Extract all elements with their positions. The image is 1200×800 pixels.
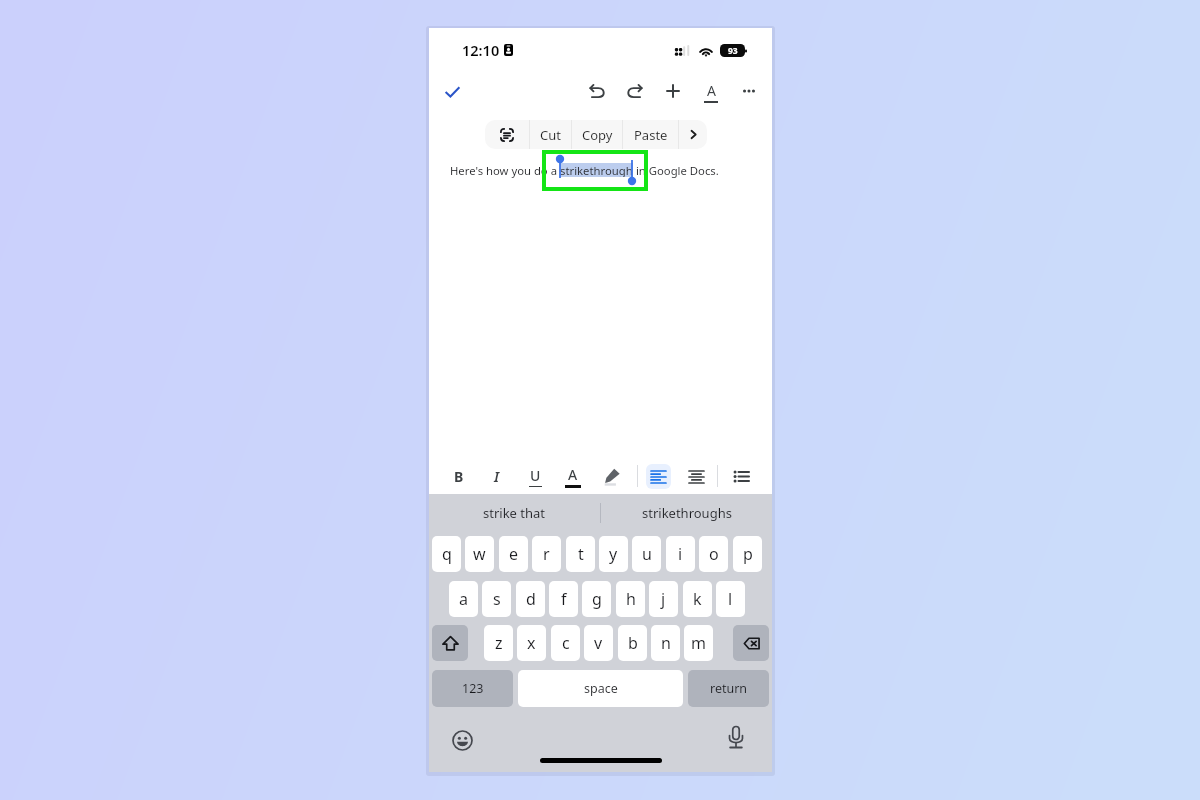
button[interactable]: Text colour bbox=[559, 462, 587, 490]
button[interactable]: n bbox=[651, 625, 680, 661]
button[interactable]: u bbox=[632, 536, 661, 572]
staticText: h bbox=[626, 588, 636, 610]
button[interactable]: Done bbox=[436, 76, 468, 108]
staticText: return bbox=[710, 680, 748, 697]
staticText: 12:10 bbox=[462, 40, 500, 60]
button[interactable]: Emoji bbox=[452, 730, 473, 751]
button[interactable]: h bbox=[616, 581, 645, 617]
staticText: u bbox=[642, 543, 652, 565]
button[interactable]: strikethroughs bbox=[601, 494, 772, 532]
button[interactable]: k bbox=[683, 581, 712, 617]
staticText: B bbox=[454, 467, 464, 486]
button[interactable]: space bbox=[518, 670, 683, 707]
staticText: t bbox=[578, 543, 584, 565]
button[interactable]: Insert bbox=[657, 76, 689, 108]
button[interactable]: a bbox=[449, 581, 478, 617]
button[interactable]: Cut bbox=[530, 120, 571, 149]
staticText: Paste bbox=[634, 126, 668, 144]
button[interactable]: More bbox=[679, 120, 707, 149]
button[interactable]: l bbox=[716, 581, 745, 617]
button[interactable]: j bbox=[649, 581, 678, 617]
button[interactable]: m bbox=[684, 625, 713, 661]
staticText: Cut bbox=[540, 126, 561, 144]
button[interactable]: Backspace bbox=[733, 625, 769, 661]
staticText: r bbox=[543, 543, 550, 565]
button[interactable]: Bulleted list bbox=[726, 461, 756, 491]
staticText: A bbox=[707, 81, 716, 100]
staticText: v bbox=[594, 632, 603, 654]
button[interactable]: c bbox=[551, 625, 580, 661]
button[interactable]: g bbox=[582, 581, 611, 617]
staticText: k bbox=[693, 588, 702, 610]
button[interactable]: Copy bbox=[572, 120, 622, 149]
staticText: i bbox=[678, 543, 683, 565]
button[interactable]: z bbox=[484, 625, 513, 661]
staticText: strikethrough bbox=[560, 163, 633, 177]
staticText: space bbox=[584, 680, 618, 697]
staticText: U bbox=[530, 466, 541, 485]
staticText: 93 bbox=[728, 45, 738, 57]
staticText: p bbox=[743, 543, 753, 565]
staticText: x bbox=[527, 632, 536, 654]
button[interactable]: d bbox=[516, 581, 545, 617]
button[interactable]: v bbox=[584, 625, 613, 661]
button[interactable]: I bbox=[483, 462, 511, 490]
button[interactable]: o bbox=[699, 536, 728, 572]
button[interactable]: 123 bbox=[432, 670, 513, 707]
button[interactable]: Redo bbox=[619, 76, 651, 108]
staticText: y bbox=[609, 543, 618, 565]
staticText: strike that bbox=[483, 504, 546, 522]
button[interactable]: B bbox=[445, 462, 473, 490]
staticText: w bbox=[473, 543, 486, 565]
button[interactable]: i bbox=[666, 536, 695, 572]
staticText: n bbox=[661, 632, 671, 654]
staticText: A bbox=[568, 465, 578, 484]
staticText: s bbox=[493, 588, 501, 610]
staticText: 123 bbox=[462, 680, 484, 697]
button[interactable]: U bbox=[521, 462, 549, 490]
button[interactable]: return bbox=[688, 670, 769, 707]
button[interactable]: e bbox=[499, 536, 528, 572]
staticText: a bbox=[459, 588, 468, 610]
button[interactable]: Dictate bbox=[727, 725, 745, 750]
button[interactable]: s bbox=[482, 581, 511, 617]
button[interactable]: r bbox=[532, 536, 561, 572]
staticText: g bbox=[592, 588, 602, 610]
button[interactable]: y bbox=[599, 536, 628, 572]
staticText: in Google Docs. bbox=[633, 163, 719, 178]
button[interactable]: Undo bbox=[581, 76, 613, 108]
staticText: b bbox=[628, 632, 638, 654]
button[interactable]: x bbox=[517, 625, 546, 661]
button[interactable]: Align center bbox=[684, 464, 709, 489]
staticText: Here's how you do a bbox=[450, 163, 560, 178]
staticText: o bbox=[709, 543, 719, 565]
button[interactable]: More options bbox=[733, 76, 765, 108]
button[interactable]: strike that bbox=[429, 494, 600, 532]
staticText: e bbox=[509, 543, 519, 565]
button[interactable]: q bbox=[432, 536, 461, 572]
staticText: strikethroughs bbox=[642, 504, 732, 522]
staticText: j bbox=[661, 588, 666, 610]
staticText: m bbox=[691, 632, 706, 654]
staticText: Copy bbox=[582, 126, 613, 144]
staticText: f bbox=[561, 588, 567, 610]
staticText: c bbox=[562, 632, 570, 654]
button[interactable]: Align left bbox=[646, 464, 671, 489]
staticText: z bbox=[495, 632, 503, 654]
staticText: q bbox=[442, 543, 452, 565]
button[interactable]: f bbox=[549, 581, 578, 617]
button[interactable]: t bbox=[566, 536, 595, 572]
staticText: l bbox=[728, 588, 733, 610]
button[interactable]: Scan text bbox=[485, 120, 529, 149]
button[interactable]: Paste bbox=[623, 120, 678, 149]
button[interactable]: b bbox=[618, 625, 647, 661]
button[interactable]: w bbox=[465, 536, 494, 572]
button[interactable]: p bbox=[733, 536, 762, 572]
button[interactable]: Highlight bbox=[597, 462, 625, 490]
button[interactable]: Format text bbox=[695, 76, 727, 108]
button[interactable]: Shift bbox=[432, 625, 468, 661]
staticText: d bbox=[526, 588, 536, 610]
staticText: I bbox=[494, 467, 500, 486]
